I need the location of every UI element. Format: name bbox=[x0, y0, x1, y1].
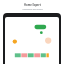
other: App preview bbox=[5, 17, 59, 64]
staticText: Home Expert bbox=[24, 3, 41, 7]
staticText: Constantly and Korea bbox=[22, 8, 43, 11]
